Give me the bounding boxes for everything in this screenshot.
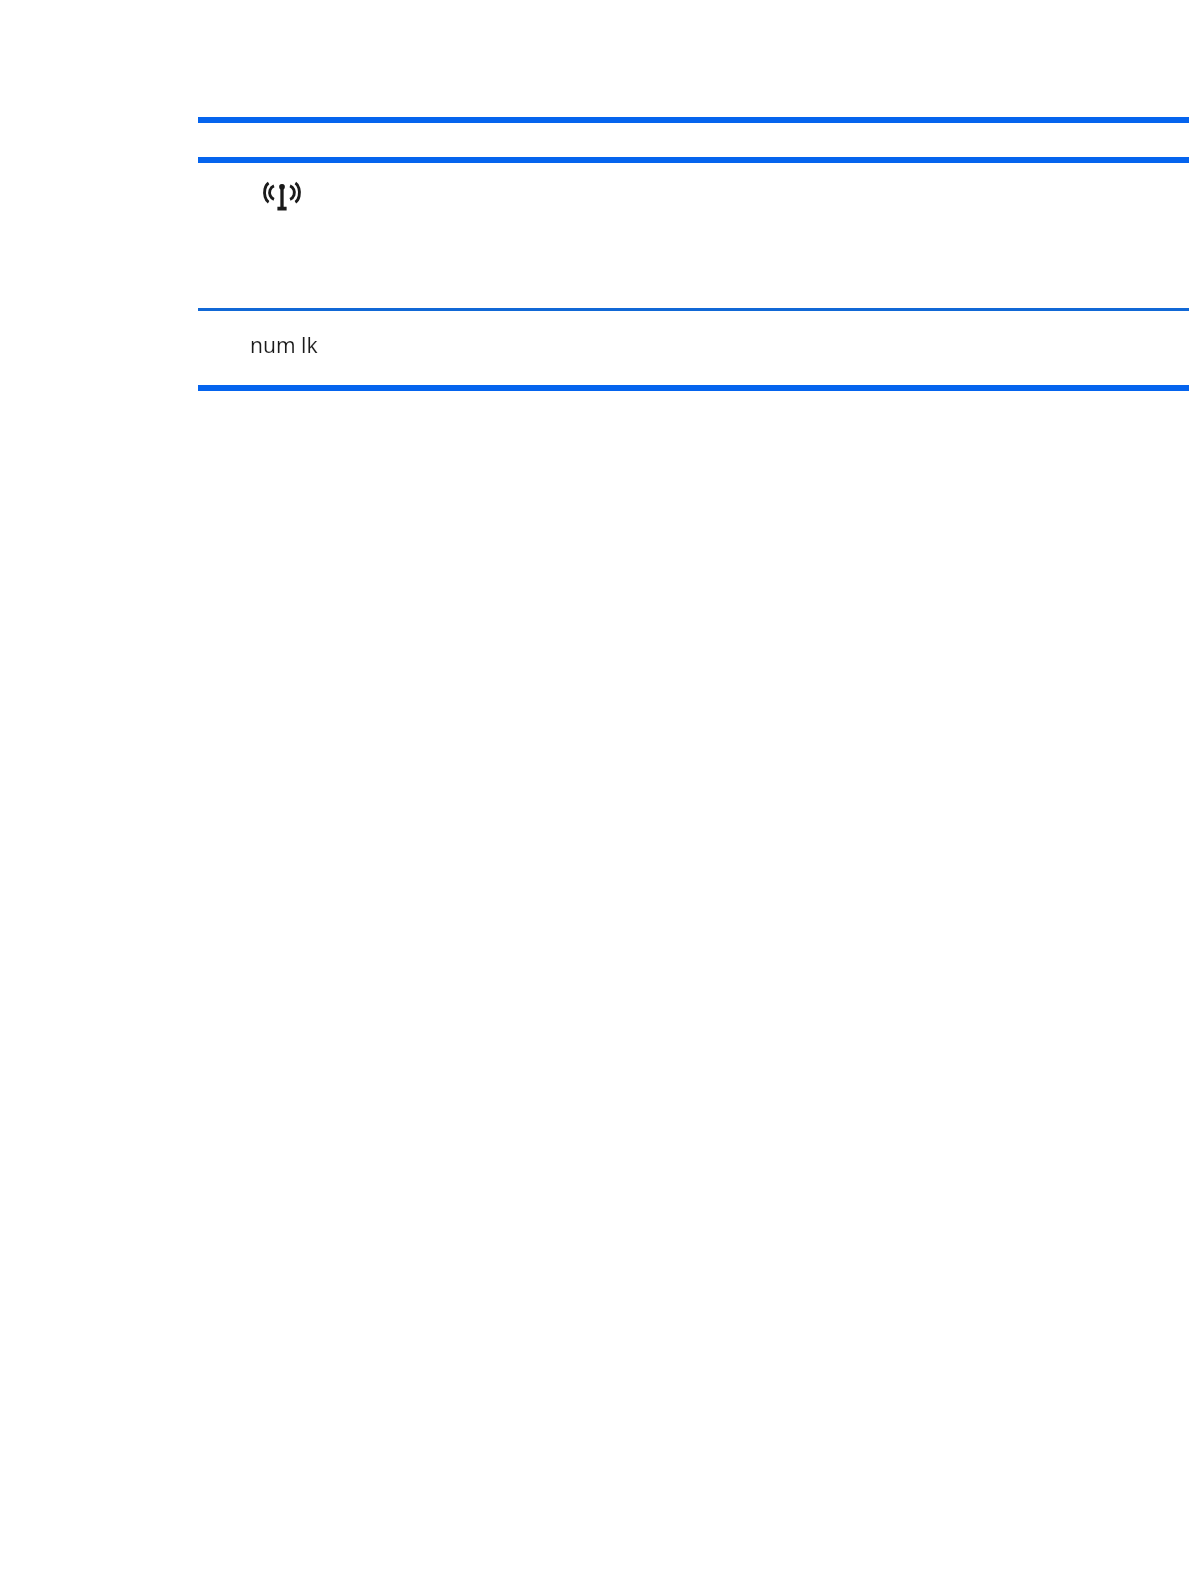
staticText: num lk bbox=[250, 331, 318, 360]
button[interactable]: num lk bbox=[198, 311, 1189, 385]
other: Wireless bbox=[259, 179, 305, 213]
button[interactable]: Wireless bbox=[198, 163, 1189, 308]
